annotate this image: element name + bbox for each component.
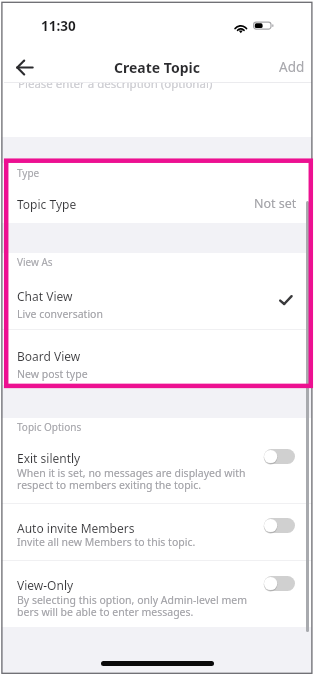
staticText: Board View xyxy=(17,348,81,364)
staticText: Invite all new Members to this topic. xyxy=(17,535,196,549)
staticText: Live conversation xyxy=(17,307,103,321)
staticText: Please enter a description (optional) xyxy=(18,76,213,92)
staticText: Chat View xyxy=(17,288,73,304)
staticText: 11:30 xyxy=(41,17,76,35)
staticText: bers will be able to enter messages. xyxy=(17,605,194,619)
button[interactable] xyxy=(0,330,318,385)
button[interactable]: Back xyxy=(9,52,39,82)
staticText: Add xyxy=(279,58,305,76)
staticText: Topic Options xyxy=(17,420,82,434)
button[interactable] xyxy=(0,163,318,223)
staticText: By selecting this option, only Admin-lev… xyxy=(17,593,248,607)
staticText: Auto invite Members xyxy=(17,520,135,536)
button[interactable] xyxy=(0,504,318,560)
button[interactable] xyxy=(0,275,318,329)
staticText: Type xyxy=(17,166,40,180)
button[interactable] xyxy=(0,435,318,503)
button[interactable]: Toggle xyxy=(264,449,295,464)
staticText: respect to members exiting the topic. xyxy=(17,478,202,492)
button[interactable]: Toggle xyxy=(264,518,295,533)
staticText: View As xyxy=(17,255,53,269)
staticText: New post type xyxy=(17,367,88,381)
staticText: Not set xyxy=(254,195,297,212)
button[interactable] xyxy=(0,561,318,627)
staticText: Topic Type xyxy=(17,196,77,212)
button[interactable]: Add xyxy=(277,54,307,80)
staticText: Exit silently xyxy=(17,450,81,466)
button[interactable]: Toggle xyxy=(264,576,295,591)
staticText: Create Topic xyxy=(114,58,200,77)
staticText: When it is set, no messages are displaye… xyxy=(17,466,246,480)
staticText: View-Only xyxy=(17,577,74,593)
